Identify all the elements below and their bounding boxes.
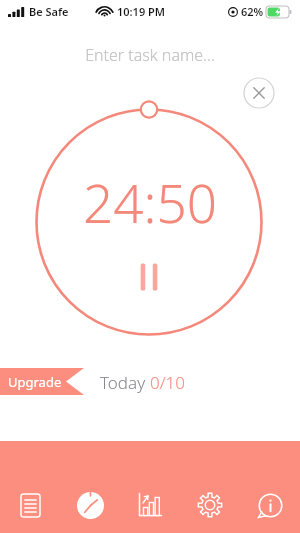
staticText: Today: [100, 371, 150, 394]
button[interactable]: Settings: [180, 441, 240, 533]
button[interactable]: Tasks: [0, 441, 60, 533]
staticText: 24:50: [0, 166, 300, 238]
button[interactable]: Close: [243, 77, 275, 109]
staticText: Enter task name...: [85, 44, 215, 66]
button[interactable]: Upgrade: [0, 368, 84, 395]
button[interactable]: Enter task name...: [0, 38, 300, 72]
button[interactable]: Info: [240, 441, 300, 533]
button[interactable]: Timer dial, pause: [34, 107, 264, 337]
staticText: Upgrade: [8, 373, 62, 391]
staticText: Be Safe: [29, 4, 69, 19]
staticText: 62%: [241, 4, 264, 19]
staticText: 0/10: [150, 371, 186, 394]
button[interactable]: Statistics: [120, 441, 180, 533]
button[interactable]: Timer: [60, 441, 120, 533]
staticText: 10:19 PM: [117, 4, 166, 19]
